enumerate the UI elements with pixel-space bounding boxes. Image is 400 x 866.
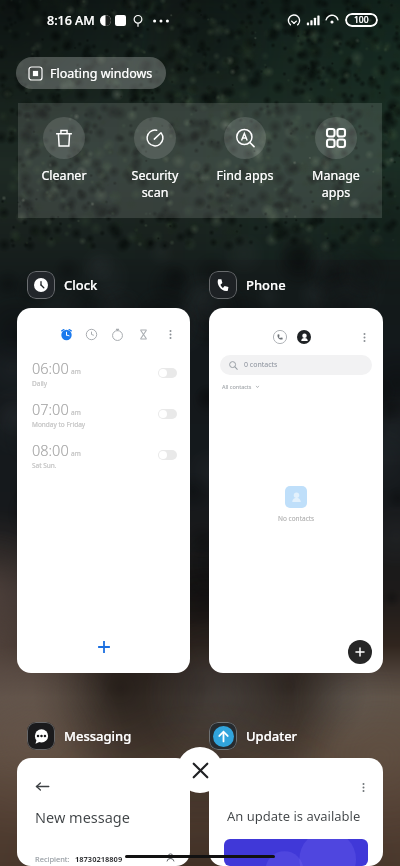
staticText: Floating windows	[50, 65, 153, 82]
button[interactable]: Manage	[294, 117, 378, 201]
staticText: All contacts	[222, 383, 252, 390]
staticText: Daily	[32, 379, 48, 388]
staticText: 8:16 AM	[47, 12, 95, 29]
button[interactable]: Cleaner	[22, 117, 106, 184]
staticText: am	[71, 408, 81, 417]
button[interactable]: Close all	[177, 747, 223, 793]
staticText: 07:00	[32, 399, 69, 419]
staticText: Clock	[64, 276, 98, 294]
staticText: Monday to Friday	[32, 420, 86, 429]
staticText: Messaging	[64, 727, 132, 745]
staticText: 06:00	[32, 358, 69, 378]
staticText: An update is available	[227, 807, 361, 825]
staticText: Manage	[294, 167, 378, 184]
button[interactable]	[158, 368, 177, 378]
button[interactable]: An update is available	[209, 758, 383, 866]
button[interactable]: Security	[113, 117, 197, 201]
button[interactable]: Find apps	[203, 117, 287, 184]
button[interactable]: Messaging	[27, 722, 132, 750]
staticText: New message	[35, 807, 130, 827]
staticText: No contacts	[278, 514, 315, 523]
button[interactable]	[158, 450, 177, 460]
button[interactable]: Add alarm	[91, 634, 117, 660]
staticText: Security	[113, 167, 197, 184]
button[interactable]: 0 contacts	[220, 355, 372, 375]
staticText: scan	[113, 184, 197, 201]
button[interactable]	[158, 409, 177, 419]
staticText: Find apps	[203, 167, 287, 184]
staticText: apps	[294, 184, 378, 201]
staticText: Updater	[246, 727, 298, 745]
staticText: 08:00	[32, 440, 69, 460]
button[interactable]: Phone	[209, 271, 286, 299]
staticText: am	[71, 367, 81, 376]
staticText: 0 contacts	[244, 360, 278, 370]
button[interactable]: Updater	[209, 722, 298, 750]
staticText: Phone	[246, 276, 286, 294]
button[interactable]: 0 contacts	[209, 308, 383, 673]
staticText: 100	[354, 14, 369, 26]
button[interactable]: Clock	[27, 271, 98, 299]
button[interactable]: Floating windows	[16, 57, 166, 89]
staticText: Sat Sun.	[32, 461, 57, 470]
button[interactable]: 06:00	[17, 308, 190, 673]
staticText: am	[71, 449, 81, 458]
button[interactable]: Add contact	[348, 640, 372, 664]
staticText: Recipient:	[35, 854, 70, 864]
staticText: Cleaner	[22, 167, 106, 184]
staticText: 18730218809	[75, 854, 123, 864]
button[interactable]: New message	[17, 758, 190, 866]
